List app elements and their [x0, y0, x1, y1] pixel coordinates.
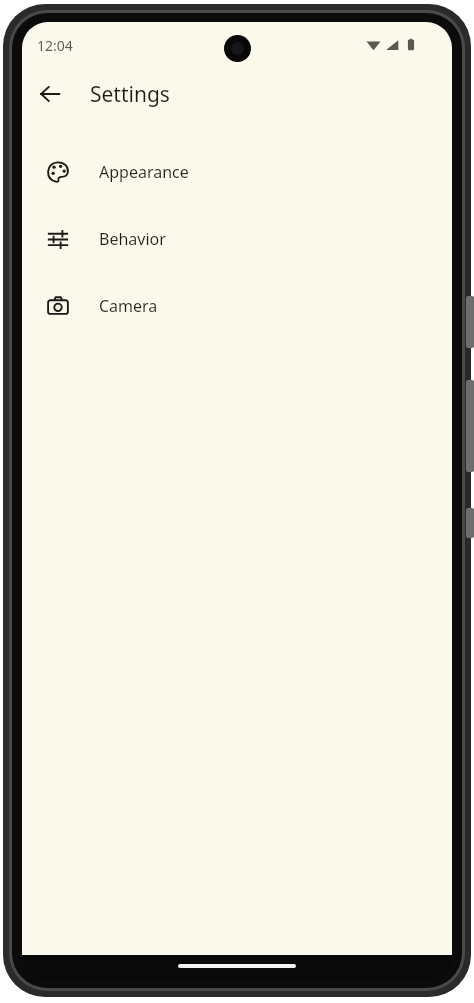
button[interactable]: Back: [30, 74, 70, 114]
staticText: Camera: [99, 295, 158, 317]
button[interactable]: Appearance: [22, 138, 452, 205]
button[interactable]: Behavior: [22, 205, 452, 272]
staticText: Settings: [90, 80, 170, 109]
staticText: 12:04: [37, 36, 73, 55]
button[interactable]: Camera: [22, 272, 452, 339]
staticText: Appearance: [99, 161, 189, 183]
staticText: Behavior: [99, 228, 166, 250]
